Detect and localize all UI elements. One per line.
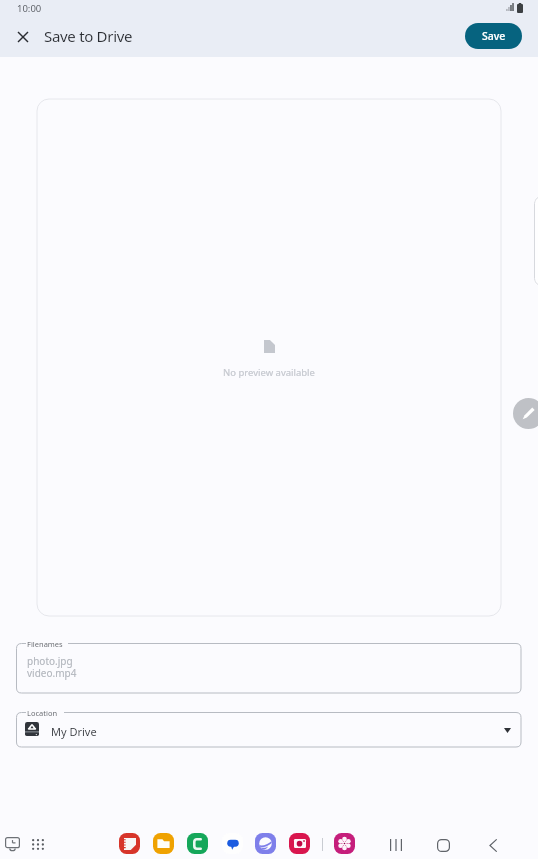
button[interactable]: Screen xyxy=(3,835,21,853)
staticText: photo.jpg video.mp4 xyxy=(27,654,77,680)
button[interactable]: Home xyxy=(431,833,455,857)
staticText: My Drive xyxy=(51,724,97,739)
button[interactable]: Save xyxy=(465,23,522,49)
button[interactable]: Camera xyxy=(289,833,310,854)
staticText: Save xyxy=(482,29,506,43)
staticText: 10:00 xyxy=(17,2,42,15)
button[interactable]: Close xyxy=(5,19,41,55)
staticText: Filenames xyxy=(27,639,63,649)
button[interactable]: Messages xyxy=(222,833,243,854)
staticText: Location xyxy=(27,708,58,718)
button[interactable]: Recents xyxy=(384,833,408,857)
button[interactable]: Files xyxy=(153,833,174,854)
button[interactable]: Location xyxy=(16,712,522,748)
button[interactable]: All apps xyxy=(29,835,47,853)
button[interactable]: Keep Notes xyxy=(119,833,140,854)
button[interactable]: Gallery xyxy=(334,833,355,854)
button[interactable]: More options xyxy=(534,196,538,286)
staticText: No preview available xyxy=(223,366,315,379)
button[interactable]: Back xyxy=(481,833,505,857)
staticText: Save to Drive xyxy=(44,26,133,46)
button[interactable]: Phone xyxy=(187,833,208,854)
button[interactable]: Edit xyxy=(513,398,538,429)
button[interactable]: Internet xyxy=(255,833,276,854)
